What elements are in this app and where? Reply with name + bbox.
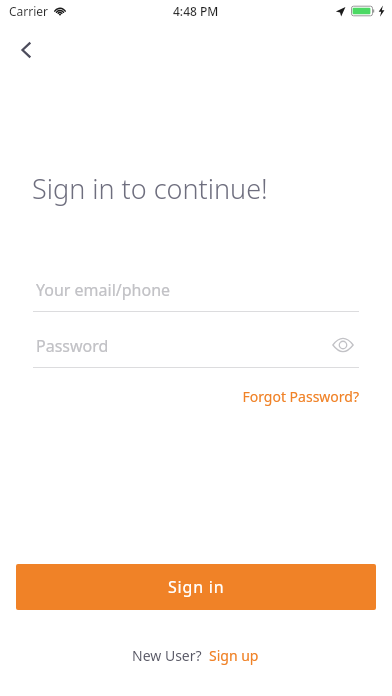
staticText: Carrier xyxy=(9,3,49,19)
staticText: Sign in xyxy=(168,576,225,598)
button[interactable]: Sign up xyxy=(208,644,260,667)
button[interactable]: Password xyxy=(33,328,359,368)
staticText: Password xyxy=(36,335,109,357)
button[interactable]: Show password xyxy=(327,329,359,361)
staticText: 4:48 PM xyxy=(173,3,219,19)
button[interactable]: Your email/phone xyxy=(33,272,359,312)
button[interactable]: Back xyxy=(6,30,46,70)
button[interactable]: Forgot Password? xyxy=(240,382,359,410)
staticText: Forgot Password? xyxy=(242,387,359,406)
staticText: Your email/phone xyxy=(36,279,171,301)
staticText: New User? xyxy=(132,646,202,665)
staticText: Sign in to continue! xyxy=(32,170,268,207)
button[interactable]: Sign in xyxy=(16,564,376,610)
staticText: Sign up xyxy=(209,646,259,665)
